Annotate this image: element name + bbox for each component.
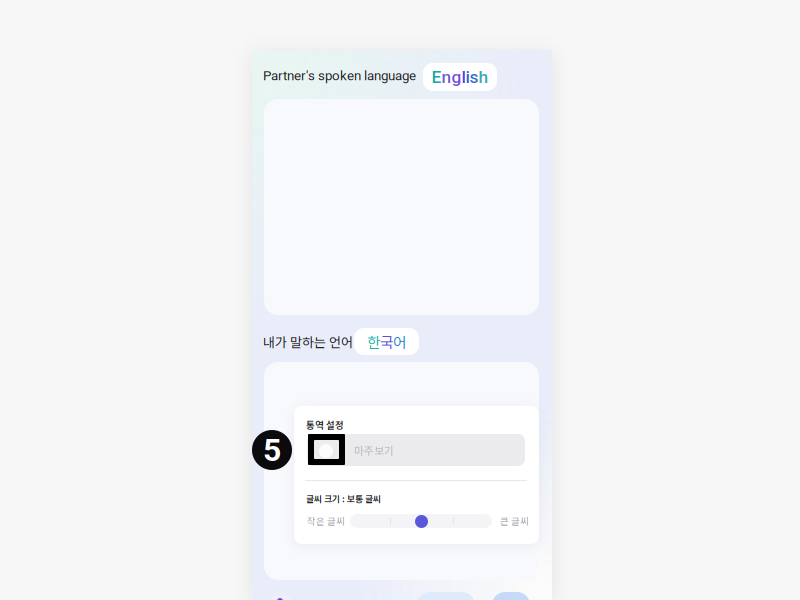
staticText: 내가 말하는 언어 [263, 332, 353, 351]
staticText: s [469, 67, 478, 87]
staticText: 큰 글씨 [500, 514, 529, 527]
button[interactable]: Face to face mode [308, 434, 345, 465]
staticText: Partner's spoken language [263, 68, 416, 84]
button[interactable]: Record [266, 594, 294, 600]
staticText: 어 [393, 331, 406, 352]
button[interactable]: Translate [417, 592, 475, 600]
staticText: 글씨 크기 : 보통 글씨 [306, 492, 381, 505]
staticText: 마주보기 [354, 442, 394, 458]
staticText: 국 [380, 331, 393, 352]
staticText: 작은 글씨 [307, 514, 345, 527]
staticText: n [441, 67, 451, 87]
button[interactable]: 마주보기 [354, 434, 474, 466]
staticText: h [478, 67, 488, 87]
staticText: E [431, 67, 441, 87]
button[interactable]: E [423, 63, 497, 91]
button[interactable]: Settings [492, 592, 530, 600]
staticText: l [461, 67, 465, 87]
button[interactable]: 한 [354, 328, 419, 355]
staticText: i [465, 67, 469, 87]
staticText: 통역 설정 [306, 418, 344, 431]
staticText: g [451, 67, 461, 87]
staticText: 5 [263, 431, 281, 469]
staticText: 한 [367, 331, 380, 352]
